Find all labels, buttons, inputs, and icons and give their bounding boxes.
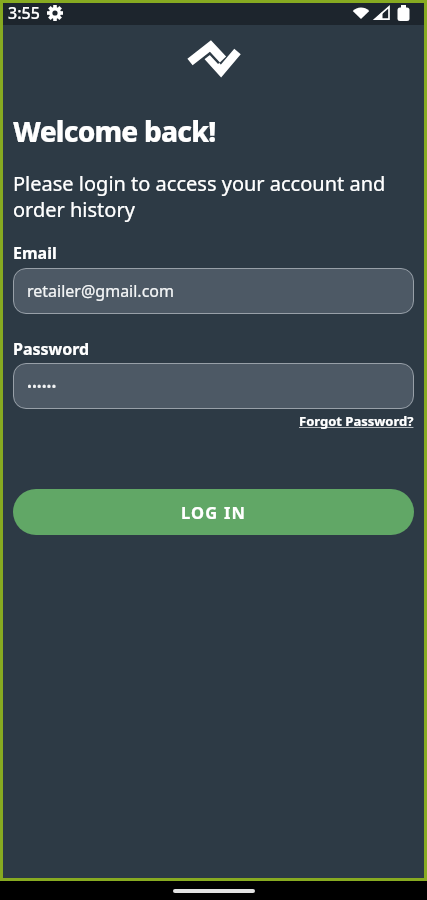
staticText: LOG IN <box>181 501 247 523</box>
button[interactable]: Forgot Password? <box>299 412 414 430</box>
staticText: •••••• <box>27 377 57 395</box>
staticText: Email <box>13 242 57 264</box>
staticText: Welcome back! <box>13 112 216 150</box>
button[interactable]: LOG IN <box>13 489 414 535</box>
staticText: Please login to access your account and … <box>13 170 386 222</box>
button[interactable]: •••••• <box>13 363 414 409</box>
button[interactable]: retailer@gmail.com <box>13 268 414 314</box>
staticText: Password <box>13 338 90 360</box>
staticText: retailer@gmail.com <box>27 280 174 302</box>
staticText: 3:55 <box>8 2 40 24</box>
